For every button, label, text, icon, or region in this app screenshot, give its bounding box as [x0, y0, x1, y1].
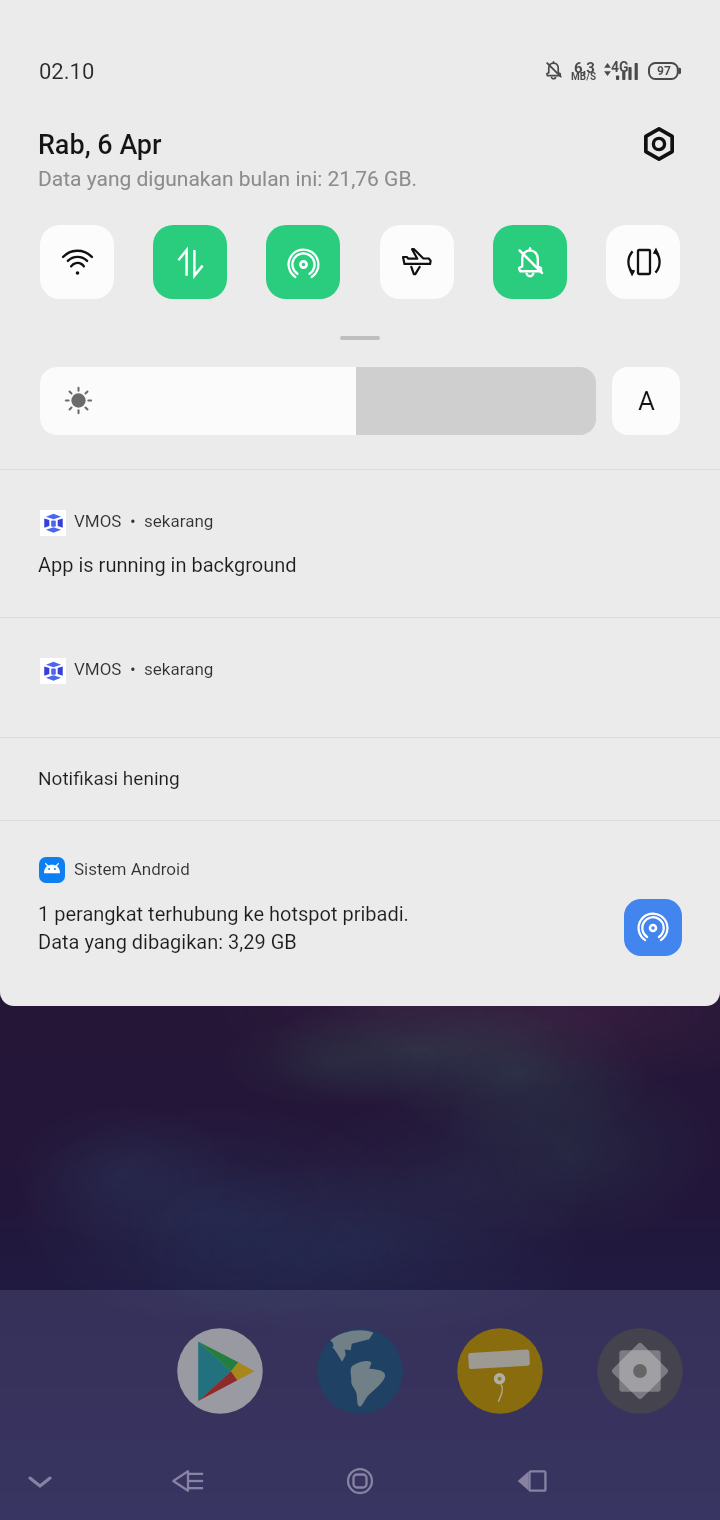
button[interactable]: Hotspot: [266, 225, 340, 299]
button[interactable]: Airplane mode: [380, 225, 454, 299]
staticText: A: [638, 386, 655, 416]
button[interactable]: Play Store: [174, 1325, 266, 1417]
button[interactable]: VMOS • sekarang: [0, 618, 720, 737]
button[interactable]: Auto brightness: [612, 367, 680, 435]
button[interactable]: Sistem Android: [0, 821, 720, 1006]
button[interactable]: Silent mode: [493, 225, 567, 299]
button[interactable]: Hotspot: [624, 899, 682, 956]
button[interactable]: Collapse notifications: [6, 1447, 74, 1515]
button[interactable]: Wi-Fi: [40, 225, 114, 299]
staticText: Rab, 6 Apr: [38, 129, 162, 161]
button[interactable]: Notifikasi hening: [0, 738, 720, 820]
button[interactable]: Home: [326, 1447, 394, 1515]
staticText: 97: [657, 64, 671, 78]
button[interactable]: Settings: [633, 118, 685, 170]
staticText: MB/S: [571, 71, 597, 83]
button[interactable]: Vibrate: [606, 225, 680, 299]
staticText: 4G: [611, 59, 629, 75]
button[interactable]: Settings: [594, 1325, 686, 1417]
staticText: Data yang dibagikan: 3,29 GB: [38, 930, 297, 953]
button[interactable]: Browser: [314, 1325, 406, 1417]
staticText: Notifikasi hening: [38, 767, 180, 789]
button[interactable]: Recent apps: [498, 1447, 566, 1515]
button[interactable]: Mobile data: [153, 225, 227, 299]
button[interactable]: Gallery: [454, 1325, 546, 1417]
button[interactable]: Brightness: [40, 367, 596, 435]
staticText: VMOS • sekarang: [74, 511, 214, 531]
button[interactable]: Back: [154, 1447, 222, 1515]
staticText: Sistem Android: [74, 859, 190, 879]
staticText: VMOS • sekarang: [74, 659, 214, 679]
staticText: App is running in background: [38, 553, 297, 576]
staticText: 02.10: [39, 59, 95, 85]
staticText: Data yang digunakan bulan ini: 21,76 GB.: [38, 167, 418, 192]
staticText: 1 perangkat terhubung ke hotspot pribadi…: [38, 902, 409, 925]
staticText: 6,3: [574, 59, 595, 77]
button[interactable]: VMOS • sekarang: [0, 470, 720, 617]
